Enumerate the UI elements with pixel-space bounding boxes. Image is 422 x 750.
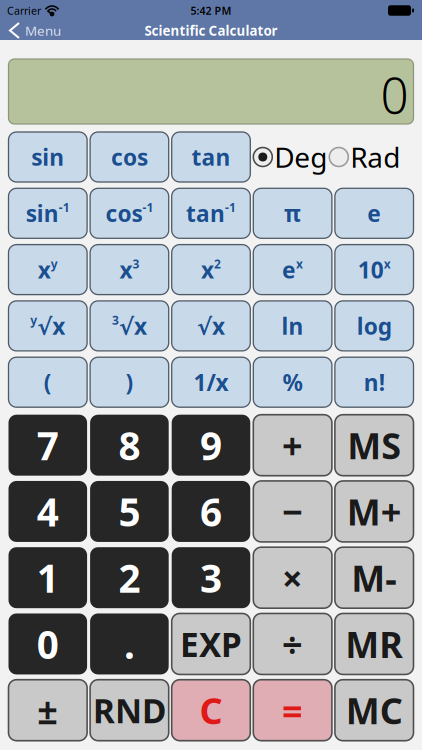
button[interactable]: n! bbox=[335, 357, 413, 407]
staticText: × bbox=[282, 554, 303, 602]
staticText: cos-1 bbox=[105, 198, 153, 228]
button[interactable]: y√x bbox=[8, 301, 87, 351]
button[interactable]: % bbox=[253, 357, 332, 407]
button[interactable]: 8 bbox=[90, 415, 169, 476]
staticText: 0 bbox=[37, 618, 59, 670]
staticText: 8 bbox=[118, 419, 140, 471]
button[interactable]: Radians bbox=[329, 138, 400, 176]
button[interactable]: MS bbox=[335, 415, 413, 476]
staticText: Carrier bbox=[7, 3, 41, 18]
button[interactable]: ÷ bbox=[253, 613, 332, 674]
button[interactable]: x2 bbox=[172, 245, 250, 295]
staticText: 2 bbox=[118, 552, 140, 603]
button[interactable]: 4 bbox=[8, 481, 87, 542]
staticText: tan bbox=[191, 142, 230, 172]
staticText: 1 bbox=[37, 552, 59, 603]
button[interactable]: M- bbox=[335, 547, 413, 608]
button[interactable]: − bbox=[253, 481, 332, 542]
staticText: MS bbox=[347, 421, 401, 469]
button[interactable]: × bbox=[253, 547, 332, 608]
staticText: xy bbox=[38, 254, 58, 285]
button[interactable]: e bbox=[335, 188, 413, 238]
staticText: MR bbox=[345, 620, 403, 668]
staticText: x2 bbox=[201, 254, 221, 285]
button[interactable]: 1 bbox=[8, 547, 87, 608]
button[interactable]: ± bbox=[8, 680, 87, 741]
staticText: 0 bbox=[380, 62, 408, 127]
button[interactable]: 5 bbox=[90, 481, 169, 542]
button[interactable]: cos bbox=[90, 132, 169, 182]
button[interactable]: = bbox=[253, 680, 332, 741]
button[interactable]: tan bbox=[172, 132, 250, 182]
button[interactable]: π bbox=[253, 188, 332, 238]
button[interactable]: 0 bbox=[8, 613, 87, 674]
staticText: . bbox=[124, 618, 135, 670]
staticText: Rad bbox=[350, 138, 400, 176]
staticText: π bbox=[284, 198, 301, 228]
staticText: 7 bbox=[37, 419, 59, 471]
button[interactable]: ln bbox=[253, 301, 332, 351]
staticText: EXP bbox=[180, 622, 242, 666]
staticText: 5:42 PM bbox=[190, 3, 231, 18]
staticText: tan-1 bbox=[186, 198, 236, 228]
button[interactable]: ) bbox=[90, 357, 169, 407]
staticText: x3 bbox=[119, 254, 139, 285]
button[interactable]: 2 bbox=[90, 547, 169, 608]
button[interactable]: ( bbox=[8, 357, 87, 407]
staticText: y√x bbox=[30, 311, 65, 341]
button[interactable]: 6 bbox=[172, 481, 250, 542]
staticText: 10x bbox=[358, 254, 391, 285]
button[interactable]: EXP bbox=[172, 613, 250, 674]
button[interactable]: √x bbox=[172, 301, 250, 351]
staticText: % bbox=[283, 367, 303, 397]
button[interactable]: 1/x bbox=[172, 357, 250, 407]
staticText: √x bbox=[197, 311, 225, 341]
button[interactable]: RND bbox=[90, 680, 169, 741]
staticText: ( bbox=[44, 367, 52, 397]
button[interactable]: 3√x bbox=[90, 301, 169, 351]
button[interactable]: 10x bbox=[335, 245, 413, 295]
button[interactable]: C bbox=[172, 680, 250, 741]
staticText: ÷ bbox=[282, 620, 303, 668]
button[interactable]: xy bbox=[8, 245, 87, 295]
button[interactable]: sin bbox=[8, 132, 87, 182]
button[interactable]: sin-1 bbox=[8, 188, 87, 238]
button[interactable]: x3 bbox=[90, 245, 169, 295]
staticText: sin bbox=[31, 142, 64, 172]
button[interactable]: tan-1 bbox=[172, 188, 250, 238]
button[interactable]: 7 bbox=[8, 415, 87, 476]
button[interactable]: 3 bbox=[172, 547, 250, 608]
staticText: M+ bbox=[347, 487, 402, 535]
button[interactable]: 9 bbox=[172, 415, 250, 476]
staticText: cos bbox=[111, 142, 148, 172]
staticText: ln bbox=[282, 311, 304, 341]
staticText: e bbox=[367, 198, 381, 228]
button[interactable]: Back to Menu bbox=[0, 22, 61, 39]
staticText: RND bbox=[93, 688, 166, 732]
button[interactable]: log bbox=[335, 301, 413, 351]
staticText: − bbox=[282, 487, 303, 535]
staticText: MC bbox=[346, 686, 403, 734]
button[interactable]: cos-1 bbox=[90, 188, 169, 238]
staticText: = bbox=[282, 686, 303, 734]
staticText: Scientific Calculator bbox=[144, 22, 277, 39]
staticText: Deg bbox=[274, 138, 327, 176]
staticText: C bbox=[199, 686, 222, 734]
staticText: log bbox=[357, 311, 392, 341]
button[interactable]: . bbox=[90, 613, 169, 674]
button[interactable]: M+ bbox=[335, 481, 413, 542]
staticText: 3√x bbox=[112, 311, 147, 341]
button[interactable]: MC bbox=[335, 680, 413, 741]
button[interactable]: MR bbox=[335, 613, 413, 674]
staticText: ) bbox=[125, 367, 133, 397]
staticText: + bbox=[282, 421, 303, 469]
staticText: ex bbox=[282, 254, 303, 285]
staticText: 9 bbox=[200, 419, 222, 471]
button[interactable]: ex bbox=[253, 245, 332, 295]
staticText: 1/x bbox=[193, 367, 228, 397]
staticText: 4 bbox=[37, 486, 59, 537]
staticText: M- bbox=[351, 554, 397, 602]
button[interactable]: Degrees bbox=[253, 138, 327, 176]
button[interactable]: + bbox=[253, 415, 332, 476]
staticText: 5 bbox=[118, 486, 140, 537]
